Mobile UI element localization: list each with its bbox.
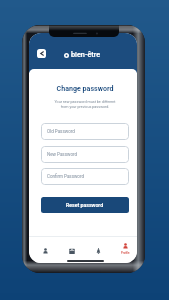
button[interactable]: New Password xyxy=(41,146,129,163)
staticText: bien-être xyxy=(71,50,101,59)
button[interactable]: Profile xyxy=(112,237,137,261)
staticText: Profile xyxy=(121,251,130,254)
button[interactable]: Agenda xyxy=(58,237,85,261)
staticText: Old Password xyxy=(47,129,75,134)
staticText: Your new password must be different from… xyxy=(41,100,129,109)
button[interactable]: Reset password xyxy=(41,197,129,213)
staticText: New Password xyxy=(47,152,77,157)
button[interactable]: Back xyxy=(37,49,46,58)
button[interactable]: Home xyxy=(32,237,58,261)
button[interactable]: Old Password xyxy=(41,123,129,140)
button[interactable]: Confirm Password xyxy=(41,168,129,185)
staticText: Confirm Password xyxy=(47,174,84,179)
button[interactable]: Notifications xyxy=(85,237,112,261)
staticText: Reset password xyxy=(66,202,104,208)
staticText: Change password xyxy=(41,84,129,92)
